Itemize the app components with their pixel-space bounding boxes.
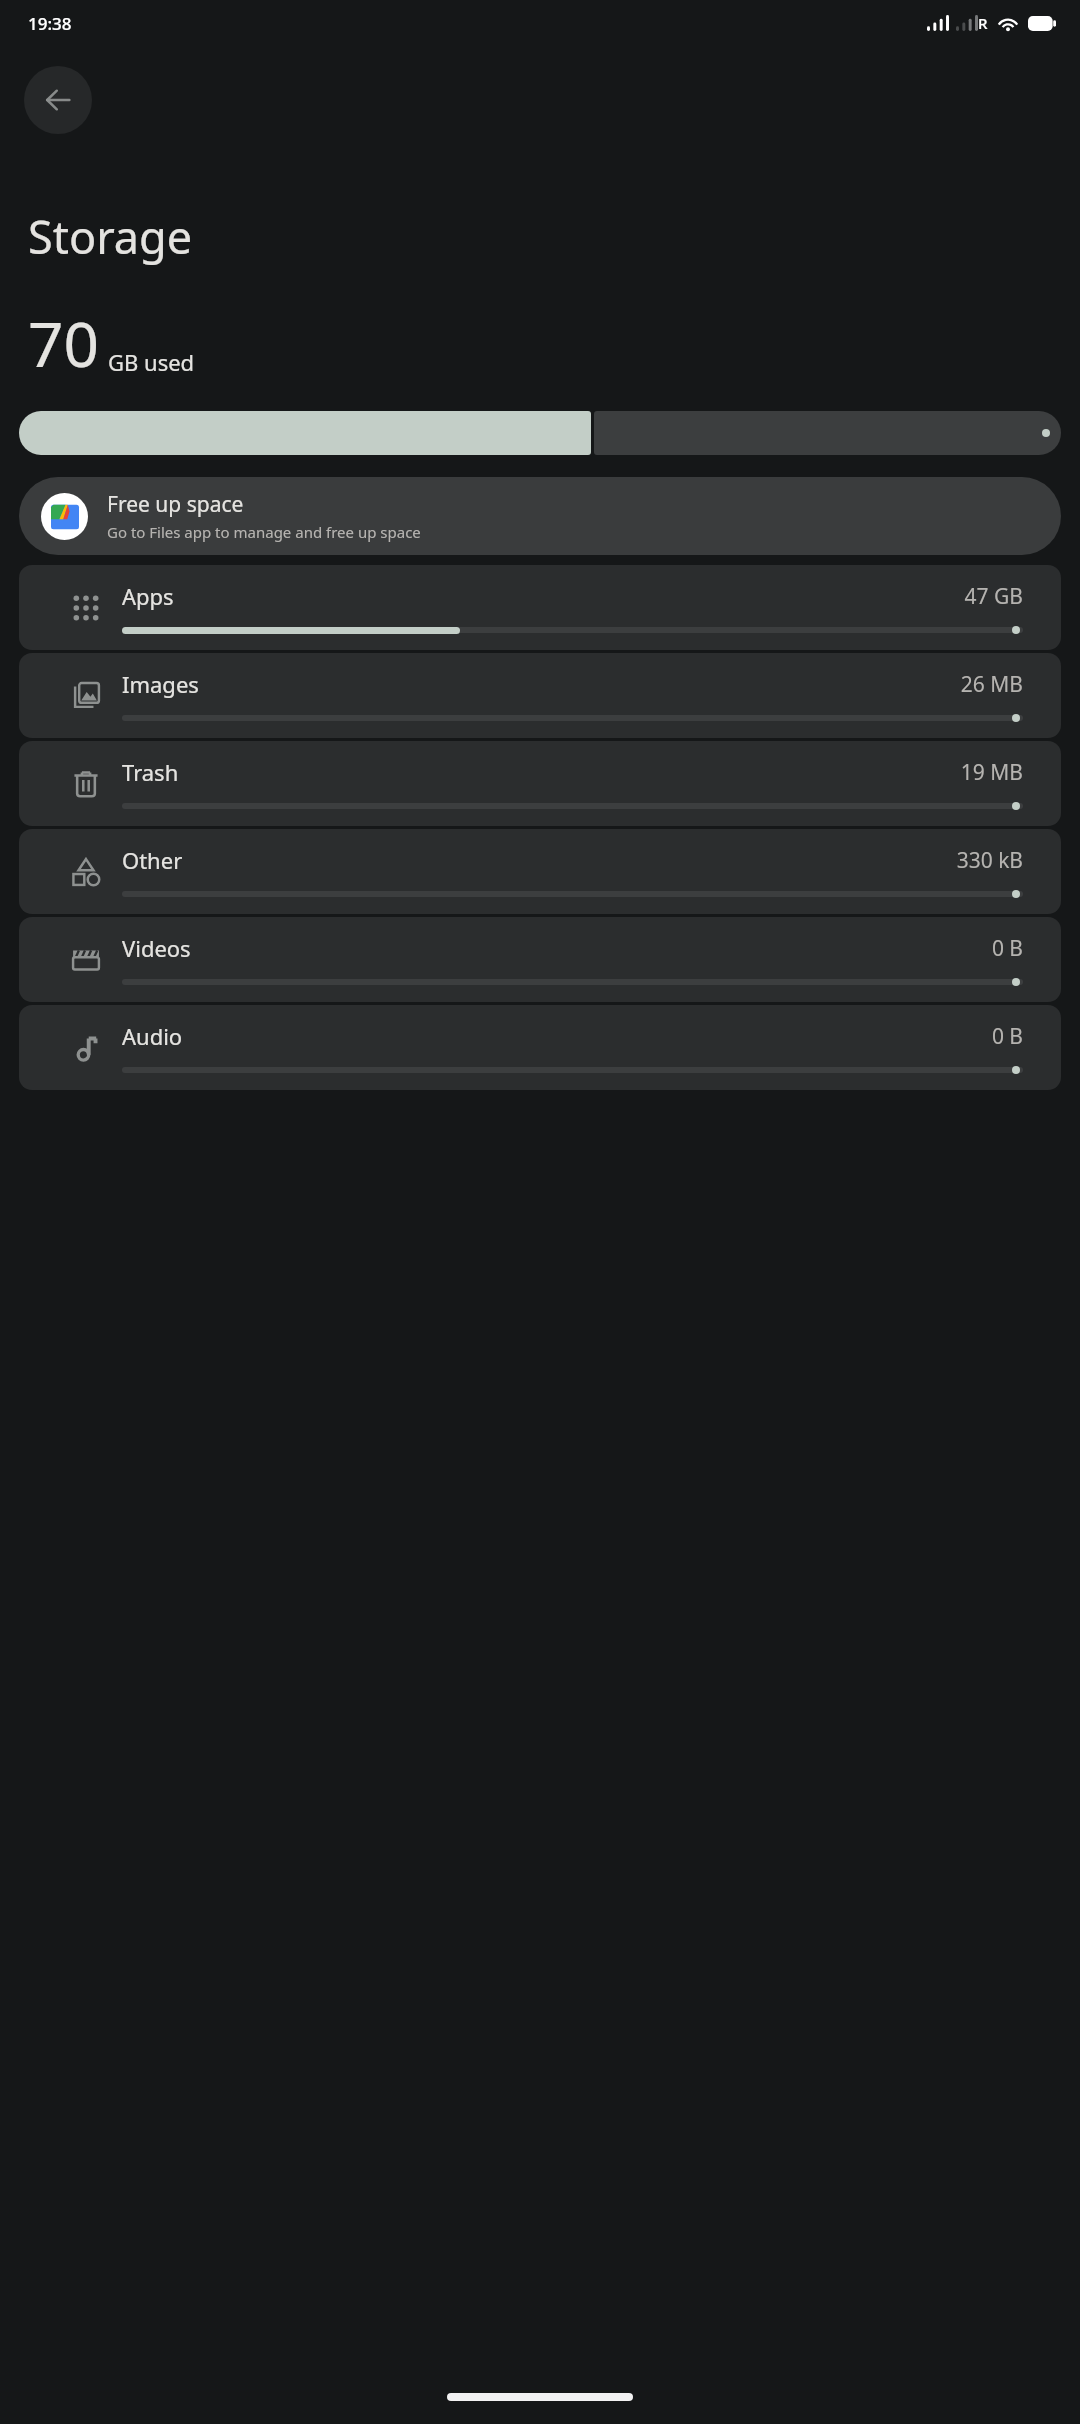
staticText: Other bbox=[122, 845, 956, 875]
button[interactable]: Other bbox=[19, 829, 1061, 914]
staticText: Videos bbox=[122, 933, 991, 963]
staticText: Apps bbox=[122, 581, 964, 611]
staticText: 47 GB bbox=[964, 582, 1023, 611]
button[interactable]: Audio bbox=[19, 1005, 1061, 1090]
staticText: 70 bbox=[28, 301, 99, 385]
button[interactable]: Images bbox=[19, 653, 1061, 738]
button[interactable]: Free up space bbox=[19, 477, 1061, 555]
staticText: 19:38 bbox=[28, 12, 72, 35]
button[interactable]: Back bbox=[24, 66, 92, 134]
button[interactable]: Apps bbox=[19, 565, 1061, 650]
staticText: 0 B bbox=[991, 1022, 1023, 1051]
staticText: 19 MB bbox=[960, 758, 1023, 787]
staticText: 26 MB bbox=[960, 670, 1023, 699]
staticText: Trash bbox=[122, 757, 960, 787]
staticText: R bbox=[978, 13, 988, 33]
staticText: Images bbox=[122, 669, 960, 699]
staticText: 330 kB bbox=[956, 846, 1023, 875]
staticText: GB used bbox=[108, 347, 195, 377]
staticText: Free up space bbox=[107, 490, 244, 519]
staticText: Audio bbox=[122, 1021, 991, 1051]
staticText: 0 B bbox=[991, 934, 1023, 963]
staticText: Storage bbox=[28, 206, 193, 267]
button[interactable]: Videos bbox=[19, 917, 1061, 1002]
staticText: Go to Files app to manage and free up sp… bbox=[107, 522, 421, 542]
button[interactable]: Trash bbox=[19, 741, 1061, 826]
